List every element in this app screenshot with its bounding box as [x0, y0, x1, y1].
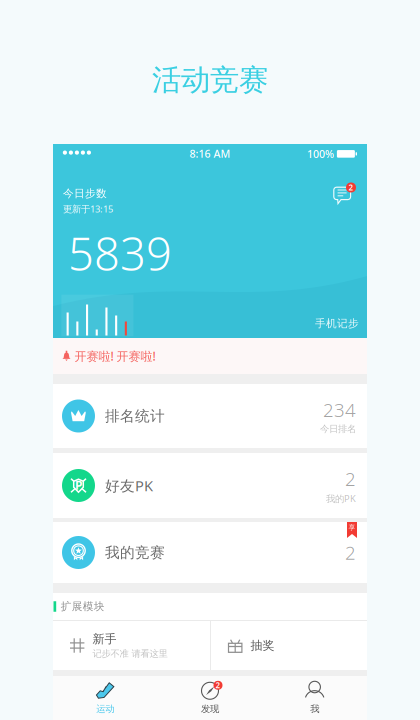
button[interactable]: P [53, 453, 367, 518]
staticText: 我 [310, 703, 319, 715]
staticText: 手机记步 [315, 317, 359, 330]
button[interactable]: 新手 [53, 621, 210, 670]
staticText: 开赛啦! 开赛啦! [74, 348, 155, 364]
staticText: 扩展模块 [61, 600, 105, 613]
staticText: 5839 [68, 223, 172, 283]
staticText: 我的PK [326, 492, 356, 505]
staticText: 运动 [96, 703, 114, 715]
button[interactable]: 开赛啦! 开赛啦! [53, 338, 367, 374]
staticText: 2 [345, 540, 356, 565]
staticText: 2 [348, 182, 353, 193]
button[interactable]: 运动 [53, 676, 158, 720]
staticText: P [75, 477, 82, 493]
staticText: 更新于13:15 [63, 203, 113, 215]
staticText: 2 [345, 466, 356, 491]
staticText: 我的竞赛 [105, 543, 165, 561]
button[interactable]: 2 [158, 676, 262, 720]
staticText: 新手 [92, 632, 116, 646]
staticText: 好友PK [105, 476, 153, 495]
button[interactable]: 消息 [333, 184, 356, 206]
staticText: 234 [323, 397, 356, 422]
staticText: 记步不准 请看这里 [92, 648, 167, 659]
button[interactable]: 排名统计 [53, 384, 367, 448]
staticText: 100% [307, 147, 334, 161]
staticText: 排名统计 [105, 407, 165, 425]
button[interactable]: 我 [262, 676, 367, 720]
staticText: 今日步数 [63, 187, 107, 200]
button[interactable]: 我的竞赛 [53, 522, 367, 583]
staticText: 今日排名 [320, 423, 356, 435]
staticText: 2 [215, 680, 220, 691]
staticText: 享 [348, 523, 355, 532]
staticText: 8:16 AM [189, 146, 230, 161]
staticText: 发现 [201, 703, 219, 715]
staticText: 活动竞赛 [152, 62, 268, 98]
button[interactable]: 抽奖 [211, 621, 367, 670]
staticText: 抽奖 [250, 638, 274, 653]
